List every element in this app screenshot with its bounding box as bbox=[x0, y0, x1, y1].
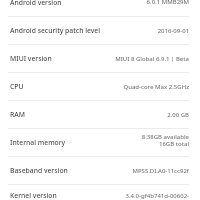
staticText: Android version bbox=[10, 0, 62, 7]
staticText: Internal memory bbox=[10, 138, 66, 147]
staticText: MIUI 8 Global 6.9.1 | Beta bbox=[115, 55, 189, 63]
staticText: 3.4.0-gf4b741d-00602- bbox=[125, 192, 189, 200]
staticText: 8.38GB available 16GB total bbox=[141, 133, 189, 148]
button[interactable]: RAM bbox=[0, 101, 200, 128]
button[interactable]: Baseband version bbox=[0, 157, 200, 184]
button[interactable]: Kernel version bbox=[0, 185, 200, 200]
button[interactable]: CPU bbox=[0, 73, 200, 100]
staticText: Kernel version bbox=[10, 191, 57, 200]
staticText: Quad-core Max 2.5GHz bbox=[123, 83, 189, 91]
staticText: 2.00 GB bbox=[167, 111, 189, 119]
staticText: RAM bbox=[10, 110, 25, 119]
staticText: CPU bbox=[10, 82, 24, 91]
staticText: MPSS.DI.A0-11cc92f bbox=[132, 167, 189, 175]
button[interactable]: MIUI version bbox=[0, 45, 200, 72]
button[interactable]: Internal memory bbox=[0, 129, 200, 156]
button[interactable]: Android version bbox=[0, 0, 200, 16]
staticText: 2016-09-01 bbox=[157, 27, 189, 35]
staticText: MIUI version bbox=[10, 54, 52, 63]
staticText: 6.0.1 MMB29M bbox=[146, 0, 189, 6]
staticText: Android security patch level bbox=[10, 26, 101, 35]
staticText: Baseband version bbox=[10, 166, 68, 175]
button[interactable]: Android security patch level bbox=[0, 17, 200, 44]
